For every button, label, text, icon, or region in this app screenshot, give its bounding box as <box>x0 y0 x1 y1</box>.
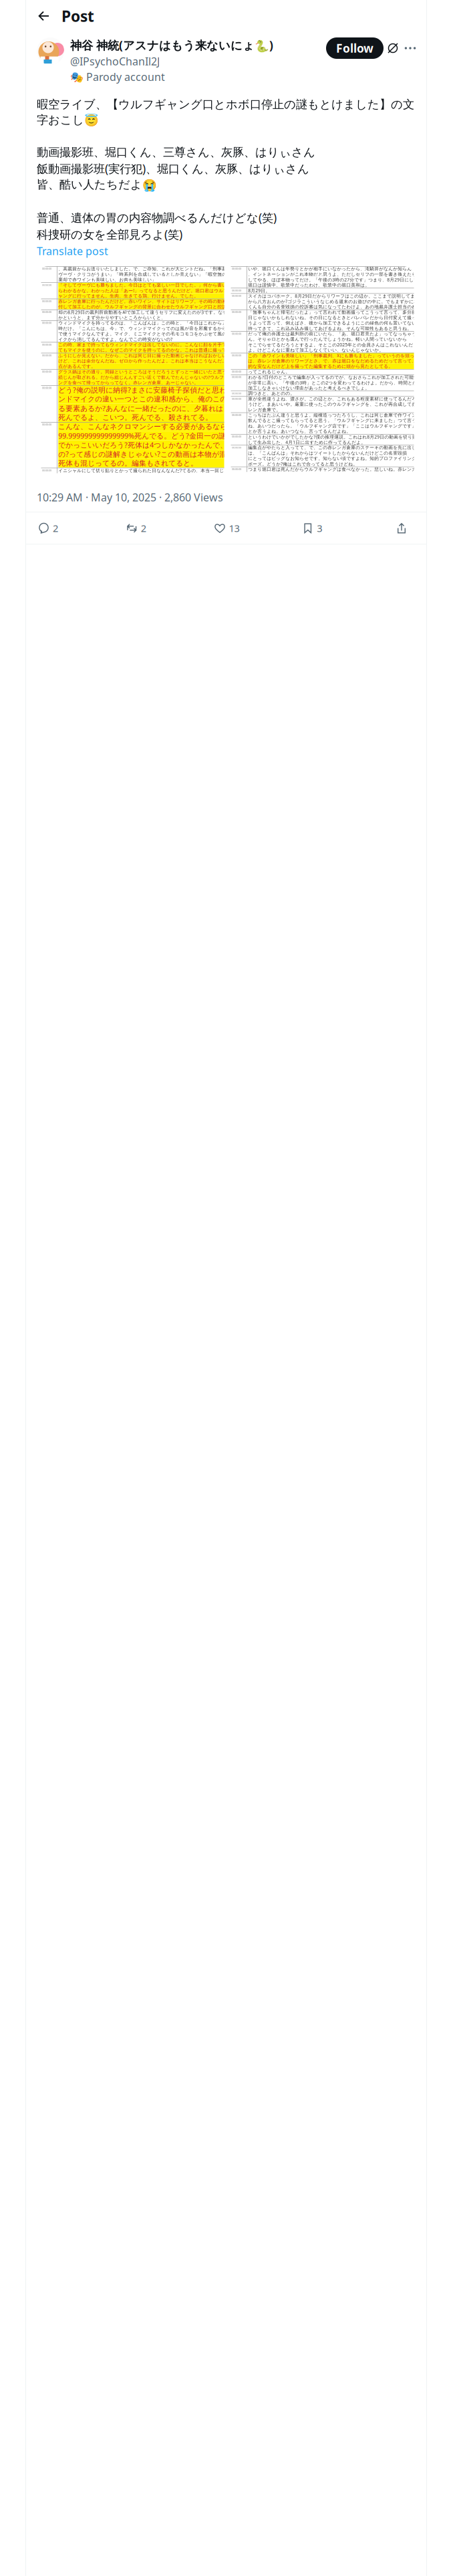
staticText: してやる、ほぼ本物ってだけ。「午後の3時の27分です」つまり、8月29日にして、 <box>248 277 423 283</box>
staticText: ね、あいつだったら。「ウルフギャング店です」「ここはウルフギャングです」 <box>248 423 416 429</box>
staticText: 00:00:00 <box>42 299 51 303</box>
staticText: 00:00:00 <box>42 310 51 314</box>
staticText: ふうにしか見えない。だから、これは同じ日に撮った動画じゃなければおかしいんだ <box>58 353 236 358</box>
staticText: かというと、まず分かりやすいところからいくと、 <box>58 315 166 320</box>
button[interactable]: Profile photo <box>37 37 70 65</box>
staticText: ん。そりゃロとかも選んで行ったんでしょうかね。軽い人間っていないから <box>248 337 407 342</box>
staticText: 死体も混じってるの。編集もされてると。 <box>58 459 198 468</box>
staticText: 00:00:00 <box>232 413 241 417</box>
staticText: てもマイクを使うのに。なぜこのマイクを持ってるのかな。これは普通に撮ってる <box>58 347 231 353</box>
staticText: 00:00:00 <box>42 321 51 325</box>
staticText: というわけでいかがでしたかな?僕の推理運説。これはれ8月29日の動画を切り貼り <box>248 434 422 440</box>
staticText: Translate post <box>37 244 108 258</box>
staticText: 🎭 Parody account <box>70 70 165 84</box>
staticText: して生み出した、4月1日に出すために作ってるんだよ。 <box>248 439 366 445</box>
staticText: 00:00:00 <box>232 446 241 449</box>
staticText: 付して加工したのが、ウルフギャングの背景に合わせたウルフギャング口と控訴審棄 <box>58 304 236 310</box>
staticText: 00:00:00 <box>232 435 241 438</box>
staticText: ンドマイクの違い一つとこの違和感から、俺のこの推理に否定す <box>58 395 271 403</box>
staticText: よ。けどこんなに重ねて加工しなくていい、ないんじゃないか。 <box>248 347 384 353</box>
staticText: 00:00:00 <box>42 354 51 357</box>
staticText: の?って感じの謎解きじゃない?この動画は本物が混じってて、 <box>58 449 263 459</box>
staticText: イクから消してるんですよ。なんでこの時安がないの? <box>58 336 173 342</box>
button[interactable]: Reply <box>38 517 80 540</box>
button[interactable]: Like <box>214 517 256 540</box>
staticText: 00:00:00 <box>232 310 241 314</box>
staticText: は、「こんばんは」それからはツイートしたからないんだけどこの名誉毀損 <box>248 450 407 456</box>
staticText: ャングに行ってません。生肉、生きてる鶏、行けません。でした。 <box>58 293 199 299</box>
staticText: くんも自分の名誉毀損の控訴審は気になってたわけよ、あの地裁弁護士担当のね。 <box>248 304 421 310</box>
button[interactable]: Grok actions <box>384 37 402 59</box>
staticText: でかっこいいだろう?死体は4つしかなかったんで、1人生きてる <box>58 440 268 450</box>
button[interactable]: Translate post <box>26 242 119 258</box>
staticText: Post <box>61 6 94 26</box>
staticText: 8月29日。 <box>248 288 270 294</box>
staticText: 赤レンガ倉庫に行ったんだけど。赤いワイン、サイトはリワーブ。その時の動画を送 <box>58 299 236 304</box>
button[interactable]: Share <box>390 517 413 540</box>
staticText: うよって言って、例えばさ、後から加工できるようにこの緑色の何も置いてない壁を <box>248 320 426 326</box>
staticText: 加工しなきゃいけない理由があったと考えるべきでしょ。 <box>248 385 370 391</box>
staticText: 00:00:00 <box>42 469 51 472</box>
button[interactable]: More options <box>402 37 418 59</box>
staticText: 00:00:00 <box>232 289 241 292</box>
staticText: ヴーヴ・クリコがうまい」「時系列を合成しているとしか見えない」「暇空無の控訴審 <box>58 272 241 277</box>
staticText: つまり堀口君は死んだからウルフギャングは食べなかった。悲しいね。赤レンガの親友 <box>248 467 430 472</box>
staticText: 、イントネーションがこれ本物だと思うよ、ただしセリフの一部を書き換えたり加工 <box>248 272 426 277</box>
staticText: 却の8月29日の裁判所前動画をAIで加工して違うセリフに変えたのが3です。なぜ <box>58 309 227 315</box>
staticText: この時、家まで持ってもウィンドマイクは出してないのに。こんなに顔を片手で持っ <box>58 342 236 347</box>
staticText: Follow <box>336 40 373 56</box>
staticText: そこでらせてるだろうとするよ。そとこの2025年との会員さんはこれないんだ <box>248 342 413 348</box>
staticText: は、赤レンガ倉庫のリワーブとさ、で、赤は堀口をなだめるためだって言って、最終 <box>248 358 426 364</box>
staticText: ウィンドマイクを持ってるのは、「こんばんは」この時と、「今日はこれから」この <box>58 320 236 326</box>
staticText: 点があるんです。 <box>58 364 96 369</box>
staticText: 00:00:00 <box>232 391 241 395</box>
staticText: いや、堀口くんは年勢りとかが相手にいなかったから、滝騎井がなんか知らんけど <box>248 266 421 272</box>
staticText: グラス鍋はその通り。同録というところはそうだろうとずっと一緒にいたと思う。 <box>58 369 231 375</box>
staticText: 時だけ。「こんにちは、今」で、ウィンドマイクってのは風が音を邪魔するから屋外 <box>58 326 236 331</box>
staticText: 編集点がやたらと入ってて、で、この赤レンガ倉庫のステーキの動画を先に出したの <box>248 445 426 450</box>
staticText: 堀口は謹慎中、歌禁中だったわけ、歌禁中の堀口英和は。 <box>248 282 370 288</box>
staticText: 00:00:00 <box>232 267 241 270</box>
staticText: 00:00:00 <box>232 354 241 357</box>
staticText: ングを食べて帰ってからってなく。赤レンガ倉庫、あーじゃない。 <box>58 380 199 385</box>
staticText: 暇空ライブ、【ウルフギャング口とホボ口停止の謎もとけました】の文字おこし😇 動画… <box>37 97 414 242</box>
staticText: わかる?日付のところで編集が入ってるのでが、なおさらこれが加工された可能性 <box>248 374 418 380</box>
staticText: 2 <box>141 522 146 535</box>
button[interactable]: Follow <box>326 37 384 59</box>
button[interactable]: Image, transcript screenshot <box>26 258 425 479</box>
staticText: けど、これは余分なんだね。ゼロから作ったんだよ。これは本当はこうなんだ。編集 <box>58 358 236 364</box>
staticText: 「無事ちゃんと帰宅だったよ」って言われて動画撮ってこうって言って、多分8月29 <box>248 309 424 315</box>
staticText: 00:00:00 <box>232 375 241 379</box>
staticText: 3 <box>317 522 322 535</box>
staticText: @IPsychoChanIl2J <box>70 54 160 68</box>
staticText: どう?俺の説明に納得?まさに安藤椅子探偵だと思わんか?ウィ <box>58 385 259 395</box>
button[interactable]: Repost <box>126 517 168 540</box>
staticText: にとってはビッグなお知らせです。知らない頃ですよね。知的プロファイリングの <box>248 456 421 461</box>
staticText: 00:00:00 <box>42 423 51 426</box>
staticText: 00:00:00 <box>42 267 51 270</box>
staticText: とか言うよね。あいつなら、言ってるんだよね。 <box>248 429 351 434</box>
staticText: 00:00:00 <box>42 370 51 373</box>
staticText: で使うマイクなんですよ。マイク、ミニマイクとその毛モコモコをかぶせて風の音をマ <box>58 331 241 337</box>
button[interactable]: Bookmark <box>302 517 344 540</box>
staticText: ってこれるじゃん。 <box>248 369 290 375</box>
staticText: 「そしてヴーヴにも勝ちました。今日はとても楽しい一日でした。」何から書いた <box>58 282 231 288</box>
staticText: 99.999999999999999%死んでる。どう?金田一の謎解きみたい <box>58 431 263 441</box>
staticText: この「赤ワインも美味しい」「刑事裁判、Xにも勝ちました」っていうのを頭っから <box>248 353 424 359</box>
staticText: 00:00:00 <box>42 283 51 287</box>
staticText: 死んでるよ、こいつ。死んでる、殺されてる。 <box>58 413 213 422</box>
staticText: だって俺の弁護士は裁判所の前にいたら、「あ、堀口君見たよ」ってなっちゃうじゃ <box>248 331 426 337</box>
staticText: うけど。まあいいや。厳重に使ったこのウルフギャングを、これが再合成して赤 <box>248 402 416 407</box>
staticText: 00:00:00 <box>232 294 241 298</box>
staticText: ボーズ。どうか?俺はこれで合ってると思うけどね。 <box>248 461 358 467</box>
staticText: 棄却で赤ワインも美味しい、お肉も美味しい」 <box>58 277 156 282</box>
staticText: 10:29 AM · May 10, 2025 · 2,860 Views <box>37 490 223 504</box>
staticText: らわかるかな。わかった人は「あー!」ってなると思うんだけど。堀口君はウルフギ <box>58 288 233 294</box>
button[interactable]: Back <box>26 0 61 32</box>
staticText: る要素あるか?あんなに一緒だったのに、夕暮れはもう違う色。 <box>58 404 267 413</box>
staticText: 神谷 神統(アスナはもう来ないにょ🐍) <box>70 37 273 53</box>
staticText: 00:00:00 <box>42 343 51 346</box>
staticText: 持ってきて、これ込み込み撮してあげるよね、そんな可能性もあると思うね。 <box>248 326 412 331</box>
staticText: から八方おんのか?ゴジラこういうなじめる週末のお遊びの中に。でもまずかに堀口 <box>248 298 423 304</box>
staticText: イニシャルにして切り貼りとかって撮られた日なんなんだ?てるの、本当一回じゃね <box>58 468 233 473</box>
